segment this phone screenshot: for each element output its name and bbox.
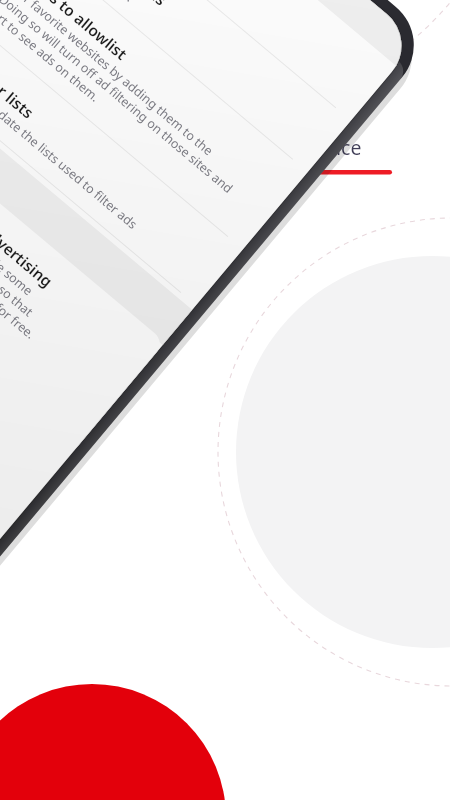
button[interactable]: Fully Optimised onboarding page [0,0,450,800]
